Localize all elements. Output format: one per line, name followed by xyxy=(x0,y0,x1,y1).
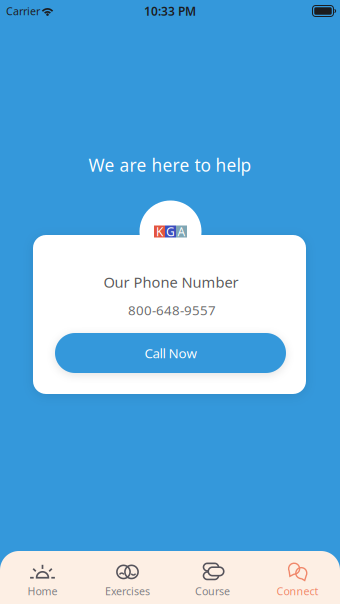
staticText: Our Phone Number xyxy=(103,272,238,292)
staticText: G xyxy=(166,223,175,239)
button[interactable]: Exercises xyxy=(85,551,170,604)
staticText: K xyxy=(156,223,163,239)
staticText: Course xyxy=(195,584,230,598)
button[interactable]: Course xyxy=(170,551,255,604)
staticText: A xyxy=(177,223,185,239)
staticText: Exercises xyxy=(105,584,150,598)
button[interactable]: Call Now xyxy=(55,333,286,373)
staticText: Home xyxy=(27,584,57,598)
staticText: We are here to help xyxy=(88,153,251,176)
staticText: 800-648-9557 xyxy=(128,301,216,319)
staticText: Call Now xyxy=(144,344,196,362)
button[interactable]: Home xyxy=(0,551,85,604)
button[interactable]: Connect xyxy=(255,551,340,604)
staticText: 10:33 PM xyxy=(144,3,196,19)
staticText: Carrier xyxy=(6,4,40,18)
staticText: Connect xyxy=(276,584,318,598)
